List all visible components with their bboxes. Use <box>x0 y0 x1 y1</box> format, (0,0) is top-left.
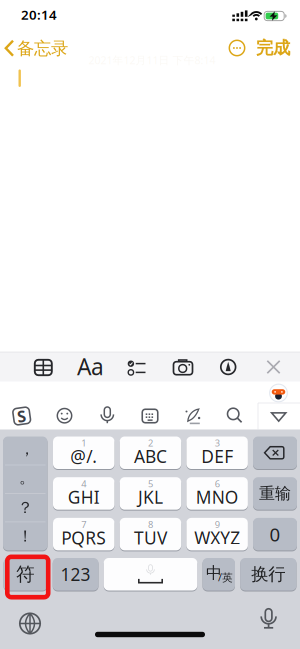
button[interactable]: Collapse keyboard <box>271 412 287 422</box>
button[interactable]: Voice input <box>98 406 116 425</box>
button[interactable]: Delete <box>253 436 297 469</box>
staticText: PQRS <box>61 526 106 549</box>
button[interactable]: 0 <box>253 518 297 550</box>
staticText: 0 <box>269 522 280 547</box>
staticText: MNO <box>196 485 239 508</box>
button[interactable]: 7 <box>53 518 114 550</box>
staticText: 1 <box>81 437 86 449</box>
staticText: 2 <box>148 437 153 449</box>
staticText: ！ <box>17 526 33 546</box>
button[interactable]: Emoji <box>55 407 73 425</box>
button[interactable]: 符 <box>3 558 47 590</box>
button[interactable]: 9 <box>186 518 248 550</box>
staticText: 备忘录 <box>17 38 68 59</box>
button[interactable]: ， <box>3 436 47 550</box>
staticText: /英 <box>218 570 233 584</box>
button[interactable]: 重输 <box>253 477 297 510</box>
staticText: Aa <box>77 351 104 381</box>
button[interactable]: 3 <box>186 436 248 469</box>
button[interactable]: Dictation <box>259 608 279 629</box>
staticText: TUV <box>134 526 167 549</box>
staticText: JKL <box>138 485 163 508</box>
button[interactable]: Search <box>226 407 243 424</box>
staticText: 换行 <box>251 564 285 585</box>
button[interactable]: 123 <box>53 558 98 590</box>
button[interactable]: Dismiss toolbar <box>266 360 280 374</box>
button[interactable]: More options <box>228 39 246 57</box>
staticText: 5 <box>148 477 153 490</box>
staticText: 7 <box>81 518 86 531</box>
staticText: 9 <box>215 518 220 531</box>
staticText: 中 <box>206 563 222 583</box>
staticText: 8 <box>148 518 153 531</box>
button[interactable]: Handwriting <box>183 406 202 425</box>
staticText: 完成 <box>256 37 290 59</box>
button[interactable]: Space <box>104 558 197 590</box>
staticText: 6 <box>215 477 220 490</box>
button[interactable]: Markup <box>220 358 237 375</box>
staticText: 4 <box>81 477 86 490</box>
button[interactable]: 2 <box>120 436 181 469</box>
staticText: ？ <box>17 498 33 518</box>
button[interactable]: Insert table <box>32 357 54 377</box>
button[interactable]: Formatting <box>75 355 105 377</box>
staticText: S <box>17 405 26 427</box>
button[interactable]: Keyboard layout <box>141 407 159 425</box>
staticText: WXYZ <box>194 526 240 549</box>
staticText: ， <box>19 439 35 459</box>
button[interactable]: Camera <box>172 359 193 376</box>
button[interactable]: 1 <box>53 436 114 469</box>
button[interactable]: Switch keyboard <box>19 612 41 634</box>
button[interactable]: 完成 <box>253 39 293 57</box>
staticText: 20:14 <box>21 6 57 23</box>
button[interactable]: Sogou input <box>12 406 32 426</box>
button[interactable]: 5 <box>120 477 181 510</box>
staticText: @/. <box>70 445 97 468</box>
staticText: 符 <box>16 563 35 586</box>
button[interactable]: Checklist <box>127 358 146 376</box>
button[interactable]: 8 <box>120 518 181 550</box>
staticText: 。 <box>19 468 35 487</box>
staticText: DEF <box>201 445 233 468</box>
button[interactable]: 6 <box>186 477 248 510</box>
staticText: 重输 <box>259 484 291 503</box>
button[interactable]: 换行 <box>240 558 296 590</box>
button[interactable]: Assistant <box>268 383 288 403</box>
staticText: 3 <box>215 437 220 449</box>
button[interactable]: 中 <box>202 558 235 590</box>
staticText: GHI <box>68 485 100 508</box>
button[interactable]: 4 <box>53 477 114 510</box>
staticText: 123 <box>61 563 91 586</box>
staticText: ABC <box>134 445 167 468</box>
button[interactable]: Back to Notes <box>4 40 68 57</box>
